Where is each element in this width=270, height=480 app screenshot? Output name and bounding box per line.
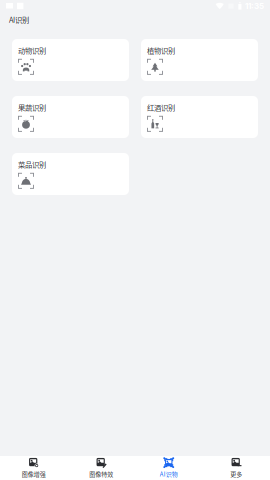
staticText: AI识物 [160, 470, 178, 478]
button[interactable]: 图像增强 [0, 454, 67, 480]
staticText: 菜品识别 [18, 159, 46, 170]
button[interactable]: AI识物 [135, 454, 202, 480]
staticText: AI识别 [9, 14, 29, 25]
button[interactable]: 红酒识别 [141, 96, 258, 138]
button[interactable]: 图像特效 [67, 454, 135, 480]
button[interactable]: 动物识别 [12, 39, 129, 81]
staticText: 图像增强 [22, 470, 46, 478]
button[interactable]: 更多 [202, 454, 270, 480]
staticText: 红酒识别 [147, 102, 175, 113]
staticText: 更多 [230, 470, 242, 478]
staticText: 11:35 [245, 1, 264, 11]
button[interactable]: 果蔬识别 [12, 96, 129, 138]
staticText: 植物识别 [147, 45, 175, 56]
button[interactable]: 菜品识别 [12, 153, 129, 195]
button[interactable]: 植物识别 [141, 39, 258, 81]
staticText: 动物识别 [18, 45, 46, 56]
staticText: 图像特效 [89, 470, 113, 478]
staticText: 果蔬识别 [18, 102, 46, 113]
